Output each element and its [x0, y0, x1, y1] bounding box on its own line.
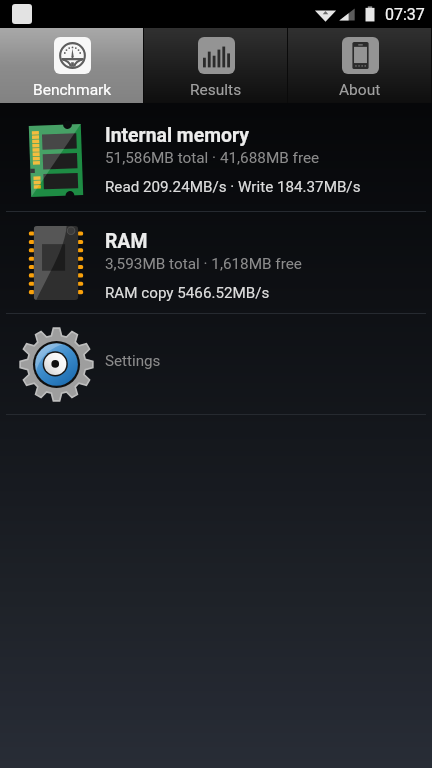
staticText: About — [339, 81, 381, 99]
button[interactable]: About — [288, 28, 432, 103]
button[interactable]: Benchmark — [0, 28, 144, 103]
staticText: Internal memory — [105, 124, 249, 147]
staticText: RAM copy 5466.52MB/s — [105, 284, 270, 302]
button[interactable]: RAM — [0, 212, 432, 313]
button[interactable]: Results — [144, 28, 288, 103]
staticText: RAM — [105, 230, 148, 253]
staticText: Settings — [105, 352, 161, 370]
button[interactable]: Internal memory — [0, 103, 432, 211]
staticText: Read 209.24MB/s · Write 184.37MB/s — [105, 178, 361, 196]
staticText: Benchmark — [33, 81, 112, 99]
staticText: 07:37 — [385, 5, 425, 24]
staticText: Results — [190, 81, 242, 99]
staticText: 3,593MB total · 1,618MB free — [105, 255, 302, 273]
button[interactable]: Settings — [0, 314, 432, 414]
staticText: 51,586MB total · 41,688MB free — [105, 149, 320, 167]
